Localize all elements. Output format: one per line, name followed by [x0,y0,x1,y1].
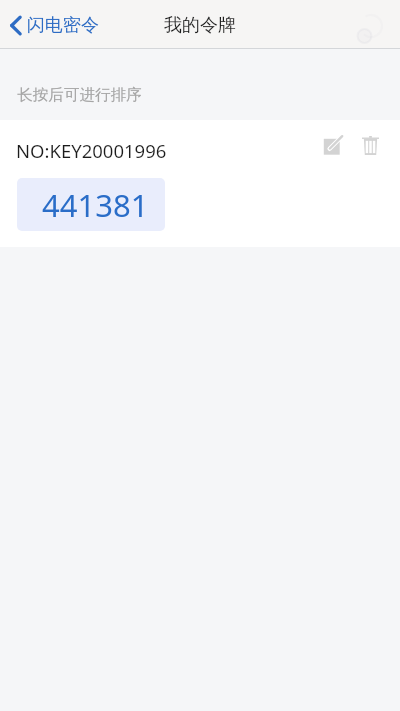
staticText: 长按后可进行排序 [17,85,142,105]
button[interactable]: Edit [316,128,350,162]
staticText: NO:KEY20001996 [16,138,167,163]
button[interactable]: NO:KEY20001996 [0,120,400,247]
staticText: 闪电密令 [27,14,99,37]
staticText: 我的令牌 [164,14,236,37]
button[interactable]: 闪电密令 [0,5,111,44]
button[interactable]: Delete [353,128,387,162]
button[interactable]: 441381 [17,178,165,231]
staticText: 441381 [42,184,149,226]
